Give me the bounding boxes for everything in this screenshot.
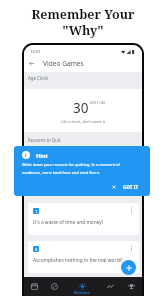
staticText: Video Games — [43, 59, 84, 68]
staticText: Write down your reasons for quitting. In… — [22, 162, 120, 175]
button[interactable]: Back — [26, 58, 37, 69]
staticText: Accomplishes nothing in the real world! — [33, 257, 122, 264]
button[interactable]: No smoking — [44, 277, 64, 296]
staticText: 1 — [35, 209, 38, 214]
staticText: It's a waste of time and money! — [33, 219, 104, 226]
button[interactable]: 1 — [28, 203, 139, 235]
staticText: i — [25, 152, 27, 159]
button[interactable]: Statistics — [100, 277, 121, 296]
button[interactable]: More options — [127, 205, 135, 213]
staticText: Reasons to Quit — [28, 137, 61, 143]
button[interactable]: GOT IT — [120, 181, 142, 193]
staticText: Remember Your "Why" — [31, 6, 135, 38]
staticText: Age Clock — [28, 75, 49, 81]
button[interactable]: Calendar — [24, 277, 44, 296]
button[interactable]: More options — [127, 243, 135, 251]
staticText: Hint — [36, 152, 49, 160]
button[interactable]: Motivation — [64, 277, 100, 296]
staticText: Life is short, don't waste it — [61, 119, 106, 124]
button[interactable]: Dismiss — [109, 182, 118, 191]
staticText: 2 — [35, 247, 38, 252]
staticText: Motivation — [74, 291, 90, 295]
button[interactable]: 2 — [28, 241, 139, 273]
staticText: 30 — [73, 99, 89, 117]
staticText: GOT IT — [123, 184, 139, 190]
staticText: 6051140 — [90, 100, 106, 105]
staticText: 10:01 — [30, 49, 41, 55]
button[interactable]: Add reason — [121, 260, 136, 275]
button[interactable]: Achievements — [121, 277, 142, 296]
